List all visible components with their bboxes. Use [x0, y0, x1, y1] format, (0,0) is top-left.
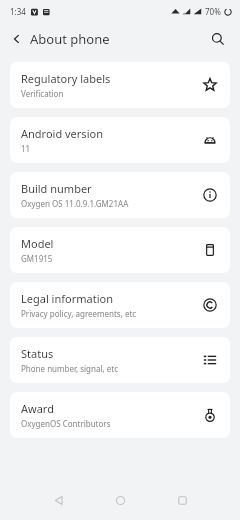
button[interactable]: Back — [36, 480, 80, 520]
button[interactable]: Home — [98, 480, 142, 520]
button[interactable]: Search — [206, 27, 230, 51]
button[interactable]: Build number — [10, 172, 230, 218]
button[interactable]: Legal information — [10, 282, 230, 328]
staticText: Build number — [21, 181, 92, 196]
staticText: Award — [21, 401, 54, 416]
button[interactable]: Back — [10, 32, 24, 46]
staticText: Regulatory labels — [21, 71, 111, 86]
staticText: Phone number, signal, etc — [21, 363, 118, 374]
staticText: Legal information — [21, 291, 113, 306]
button[interactable]: Android version — [10, 117, 230, 163]
staticText: Android version — [21, 126, 103, 141]
staticText: Privacy policy, agreements, etc — [21, 308, 137, 319]
button[interactable]: Recent apps — [160, 480, 204, 520]
staticText: Status — [21, 346, 54, 361]
staticText: GM1915 — [21, 253, 53, 264]
staticText: 70% — [205, 6, 221, 17]
staticText: Verification — [21, 88, 64, 99]
staticText: 1:34 — [10, 6, 26, 17]
staticText: About phone — [30, 30, 110, 48]
button[interactable]: Status — [10, 337, 230, 383]
button[interactable]: Model — [10, 227, 230, 273]
button[interactable]: Award — [10, 392, 230, 438]
staticText: Oxygen OS 11.0.9.1.GM21AA — [21, 198, 129, 209]
staticText: Model — [21, 236, 54, 251]
staticText: 11 — [21, 143, 31, 154]
staticText: OxygenOS Contributors — [21, 418, 111, 429]
button[interactable]: Regulatory labels — [10, 62, 230, 108]
